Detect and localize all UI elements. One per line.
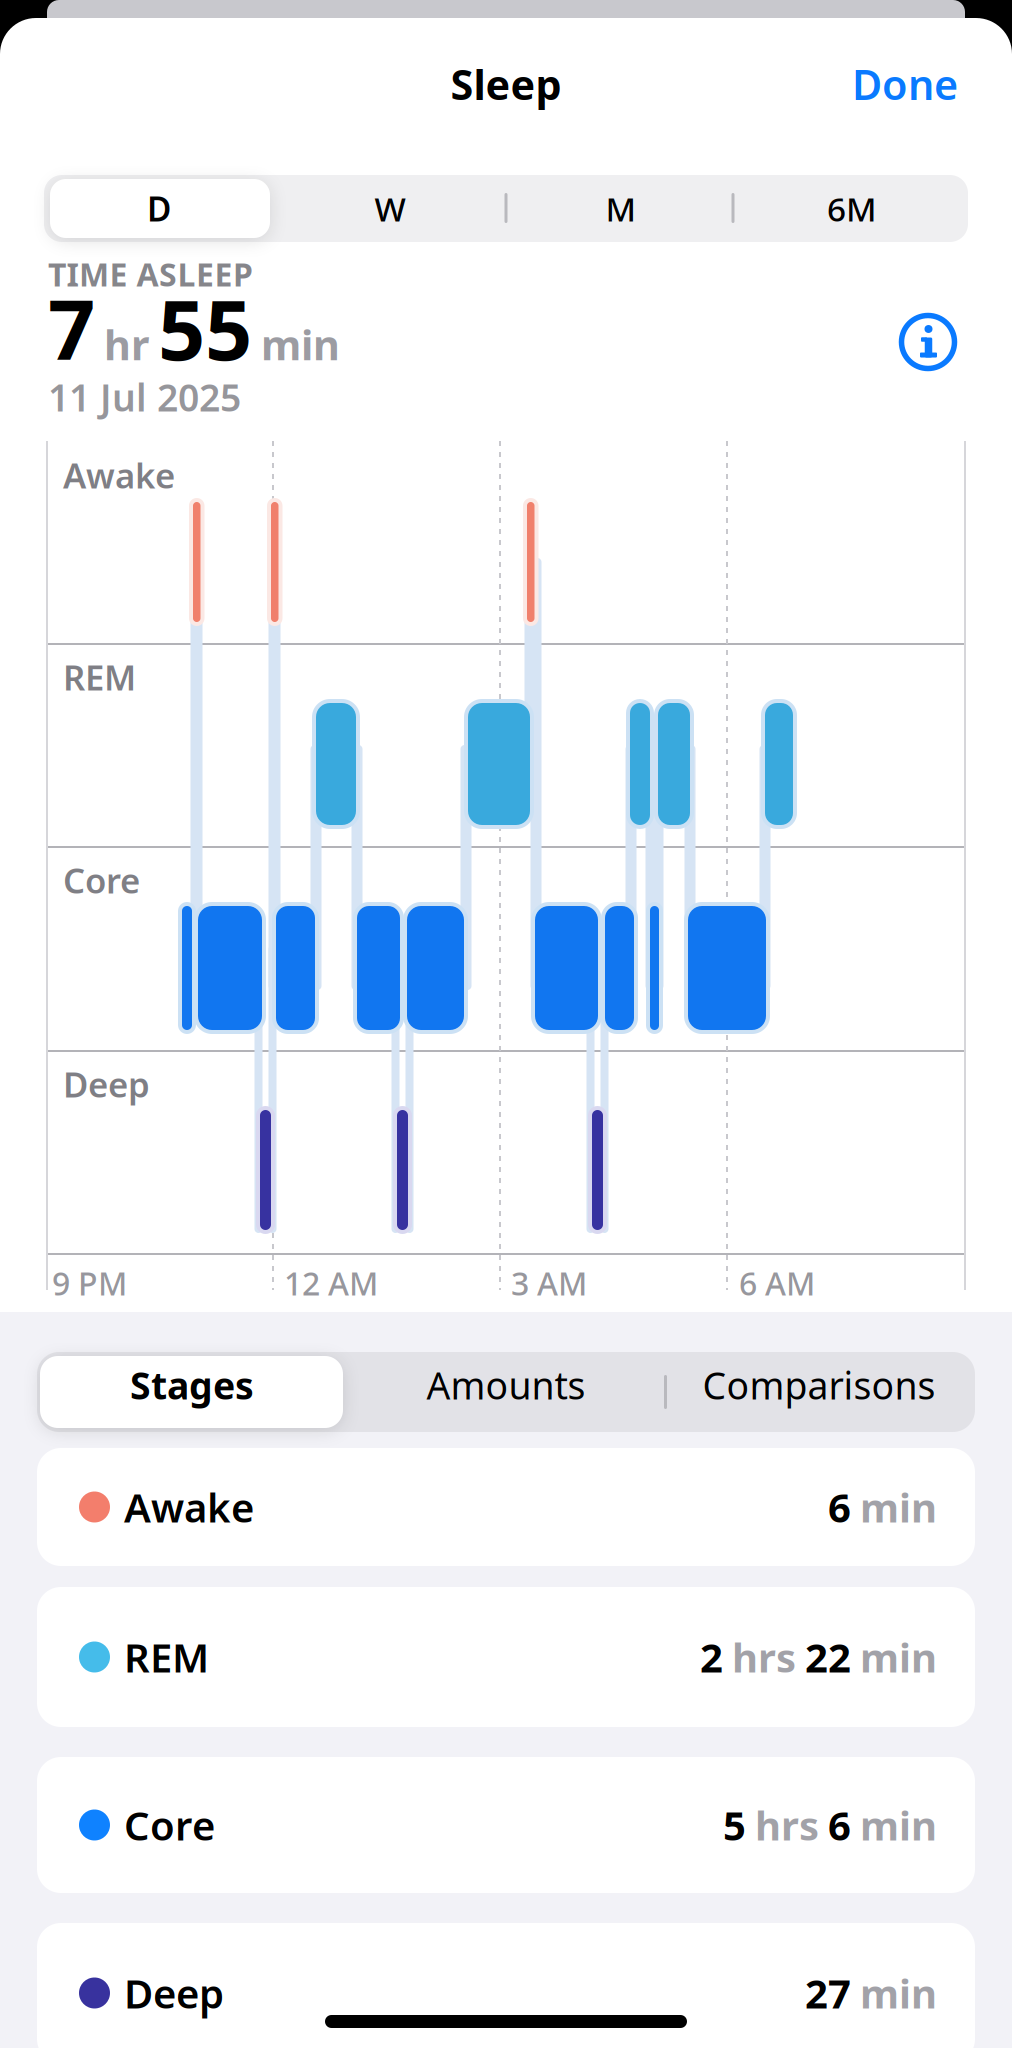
staticText: Deep: [63, 1061, 150, 1107]
staticText: 22: [805, 1630, 851, 1683]
staticText: hrs: [755, 1798, 819, 1851]
staticText: W: [374, 186, 405, 231]
staticText: hrs: [732, 1630, 796, 1683]
button[interactable]: Amounts: [356, 1348, 656, 1422]
staticText: 6: [828, 1480, 851, 1533]
staticText: hr: [104, 317, 149, 372]
staticText: min: [860, 1798, 937, 1851]
button[interactable]: W: [280, 178, 500, 238]
staticText: Core: [63, 857, 140, 903]
button[interactable]: 6M: [742, 178, 962, 238]
button[interactable]: About Time Asleep: [898, 312, 958, 372]
staticText: 27: [805, 1966, 851, 2019]
button[interactable]: Done: [852, 57, 958, 111]
staticText: 3 AM: [511, 1262, 587, 1304]
staticText: Comparisons: [702, 1360, 935, 1410]
staticText: Awake: [124, 1480, 254, 1533]
staticText: min: [860, 1630, 937, 1683]
staticText: TIME ASLEEP: [48, 253, 253, 295]
staticText: M: [605, 186, 636, 231]
staticText: min: [860, 1480, 937, 1533]
staticText: 12 AM: [284, 1262, 378, 1304]
staticText: Deep: [124, 1966, 224, 2019]
staticText: REM: [124, 1630, 209, 1683]
staticText: 5: [723, 1798, 746, 1851]
staticText: Amounts: [426, 1360, 585, 1410]
staticText: REM: [63, 654, 136, 700]
staticText: Core: [124, 1798, 215, 1851]
staticText: 55: [158, 273, 252, 383]
staticText: D: [147, 186, 171, 231]
staticText: Awake: [63, 452, 175, 498]
staticText: min: [261, 317, 340, 372]
button[interactable]: M: [511, 178, 731, 238]
staticText: 7: [48, 273, 95, 383]
staticText: 9 PM: [52, 1262, 127, 1304]
staticText: Stages: [130, 1360, 254, 1410]
staticText: Done: [852, 57, 958, 111]
button[interactable]: Comparisons: [669, 1348, 969, 1422]
staticText: 6M: [827, 186, 877, 231]
button[interactable]: D: [49, 178, 269, 238]
staticText: Sleep: [450, 57, 561, 111]
staticText: 6: [828, 1798, 851, 1851]
staticText: 6 AM: [739, 1262, 815, 1304]
staticText: min: [860, 1966, 937, 2019]
staticText: 2: [700, 1630, 723, 1683]
staticText: 11 Jul 2025: [48, 372, 241, 422]
button[interactable]: Stages: [42, 1348, 342, 1422]
